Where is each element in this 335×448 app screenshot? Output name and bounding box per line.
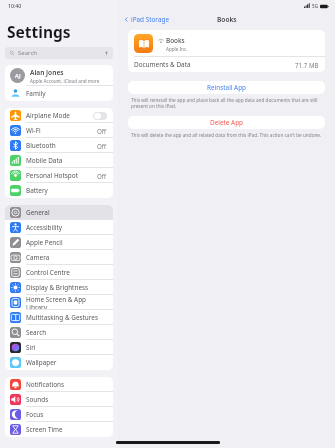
other: Dictate bbox=[104, 51, 109, 56]
button[interactable]: Search bbox=[5, 325, 113, 340]
staticText: Accessibility bbox=[26, 223, 63, 232]
button[interactable]: Wallpaper bbox=[5, 355, 113, 370]
button[interactable]: Sounds bbox=[5, 392, 113, 407]
staticText: Books bbox=[166, 36, 185, 45]
button[interactable]: Home Screen & App Library bbox=[5, 295, 113, 310]
staticText: Apple Account, iCloud and more bbox=[30, 78, 100, 84]
staticText: iPad Storage bbox=[131, 15, 170, 24]
staticText: This will reinstall the app and place ba… bbox=[131, 97, 322, 109]
staticText: Mobile Data bbox=[26, 156, 63, 165]
button[interactable]: Books bbox=[128, 30, 325, 57]
staticText: Home Screen & App Library bbox=[26, 295, 107, 310]
button[interactable]: Bluetooth bbox=[5, 138, 113, 153]
button[interactable]: Family bbox=[5, 86, 113, 101]
button[interactable]: Search bbox=[9, 47, 109, 59]
staticText: Multitasking & Gestures bbox=[26, 313, 98, 322]
staticText: Search bbox=[26, 328, 47, 337]
button[interactable]: Display & Brightness bbox=[5, 280, 113, 295]
staticText: Search bbox=[18, 49, 104, 57]
staticText: Camera bbox=[26, 253, 50, 262]
staticText: Alan Jones bbox=[30, 68, 64, 77]
staticText: Off bbox=[97, 127, 107, 135]
staticText: Reinstall App bbox=[207, 83, 247, 92]
staticText: Focus bbox=[26, 410, 44, 419]
staticText: Control Centre bbox=[26, 268, 70, 277]
button[interactable]: Apple Pencil bbox=[5, 235, 113, 250]
staticText: Documents & Data bbox=[134, 60, 295, 69]
staticText: 10:40 bbox=[8, 2, 22, 9]
button[interactable]: Battery bbox=[5, 183, 113, 198]
button[interactable]: Documents & Data bbox=[134, 57, 319, 72]
staticText: Wallpaper bbox=[26, 358, 57, 367]
staticText: Personal Hotspot bbox=[26, 171, 78, 180]
button[interactable]: Airplane Mode bbox=[5, 108, 113, 123]
staticText: Delete App bbox=[210, 118, 244, 127]
button[interactable]: Multitasking & Gestures bbox=[5, 310, 113, 325]
staticText: Settings bbox=[7, 21, 71, 42]
staticText: Display & Brightness bbox=[26, 283, 89, 292]
staticText: General bbox=[26, 208, 50, 217]
staticText: Airplane Mode bbox=[26, 111, 70, 120]
button[interactable]: General bbox=[5, 205, 113, 220]
button[interactable]: Reinstall App bbox=[128, 81, 325, 94]
staticText: Off bbox=[97, 172, 107, 180]
button[interactable]: Personal Hotspot bbox=[5, 168, 113, 183]
staticText: Bluetooth bbox=[26, 141, 56, 150]
button[interactable]: Delete App bbox=[128, 116, 325, 129]
staticText: Apple Inc. bbox=[166, 46, 188, 52]
button[interactable]: iPad Storage bbox=[124, 15, 170, 24]
staticText: Screen Time bbox=[26, 425, 63, 434]
button[interactable]: Control Centre bbox=[5, 265, 113, 280]
staticText: Apple Pencil bbox=[26, 238, 63, 247]
staticText: This will delete the app and all related… bbox=[131, 132, 322, 138]
button[interactable]: Accessibility bbox=[5, 220, 113, 235]
staticText: Battery bbox=[26, 186, 48, 195]
staticText: 71.7 MB bbox=[295, 61, 319, 69]
button[interactable]: Focus bbox=[5, 407, 113, 422]
staticText: Notifications bbox=[26, 380, 65, 389]
button[interactable]: Mobile Data bbox=[5, 153, 113, 168]
button[interactable]: Screen Time bbox=[5, 422, 113, 437]
staticText: Wi-Fi bbox=[26, 126, 41, 135]
staticText: Siri bbox=[26, 343, 36, 352]
button[interactable]: Notifications bbox=[5, 377, 113, 392]
staticText: 5G bbox=[312, 3, 318, 9]
button[interactable]: AJ bbox=[5, 65, 113, 86]
staticText: AJ bbox=[15, 72, 21, 80]
button[interactable]: Siri bbox=[5, 340, 113, 355]
staticText: Family bbox=[26, 89, 46, 98]
staticText: Books bbox=[217, 15, 237, 24]
staticText: Sounds bbox=[26, 395, 49, 404]
button[interactable]: Camera bbox=[5, 250, 113, 265]
staticText: Off bbox=[97, 142, 107, 150]
button[interactable]: Wi-Fi bbox=[5, 123, 113, 138]
